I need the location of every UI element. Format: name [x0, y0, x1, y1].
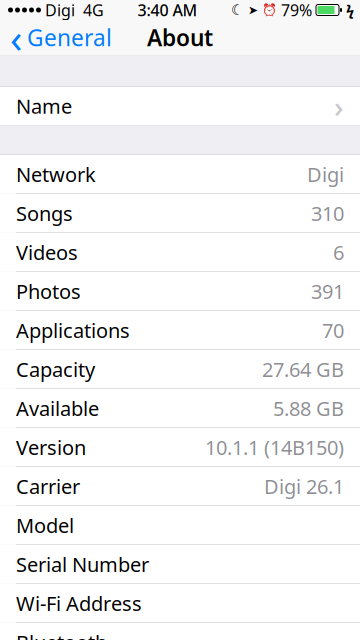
staticText: 391 — [311, 278, 344, 305]
staticText: 27.64 GB — [262, 356, 344, 383]
staticText: › — [334, 86, 344, 125]
button[interactable]: Serial Number — [0, 545, 360, 583]
staticText: Wi-Fi Address — [16, 590, 142, 617]
button[interactable]: Carrier — [0, 467, 360, 505]
button[interactable]: Photos — [0, 272, 360, 310]
button[interactable]: Available — [0, 389, 360, 427]
staticText: ⏰ — [262, 3, 277, 17]
staticText: 5.88 GB — [273, 395, 344, 422]
staticText: Digi — [41, 0, 75, 21]
staticText: Carrier — [16, 473, 80, 500]
staticText: ϟ — [346, 0, 354, 20]
staticText: Photos — [16, 278, 81, 305]
button[interactable]: Wi-Fi Address — [0, 584, 360, 622]
button[interactable]: Applications — [0, 311, 360, 349]
staticText: 70 — [322, 317, 344, 344]
button[interactable]: Version — [0, 428, 360, 466]
staticText: Songs — [16, 200, 73, 227]
staticText: Bluetooth — [16, 629, 107, 640]
staticText: Available — [16, 395, 99, 422]
button[interactable]: Bluetooth — [0, 623, 360, 640]
staticText: Digi 26.1 — [264, 473, 344, 500]
staticText: Network — [16, 161, 96, 188]
staticText: 4G — [75, 0, 104, 21]
staticText: Model — [16, 512, 74, 539]
staticText: ☾ — [231, 2, 244, 18]
staticText: Digi — [307, 161, 344, 188]
button[interactable]: Videos — [0, 233, 360, 271]
staticText: ➤ — [248, 3, 258, 17]
button[interactable]: Name — [0, 87, 360, 125]
staticText: ‹ — [10, 11, 22, 64]
staticText: 3:40 AM — [137, 0, 197, 21]
staticText: General — [27, 22, 112, 52]
staticText: 310 — [311, 200, 344, 227]
button[interactable]: Network — [0, 155, 360, 193]
staticText: Version — [16, 434, 86, 461]
button[interactable]: Capacity — [0, 350, 360, 388]
button[interactable]: ‹ — [0, 20, 122, 55]
staticText: Serial Number — [16, 551, 149, 578]
staticText: 79% — [281, 0, 312, 21]
staticText: Capacity — [16, 356, 95, 383]
staticText: Videos — [16, 239, 78, 266]
staticText: Name — [16, 93, 72, 119]
staticText: About — [147, 22, 213, 52]
staticText: 10.1.1 (14B150) — [205, 434, 344, 461]
button[interactable]: Model — [0, 506, 360, 544]
staticText: 6 — [333, 239, 344, 266]
staticText: Applications — [16, 317, 130, 344]
button[interactable]: Songs — [0, 194, 360, 232]
